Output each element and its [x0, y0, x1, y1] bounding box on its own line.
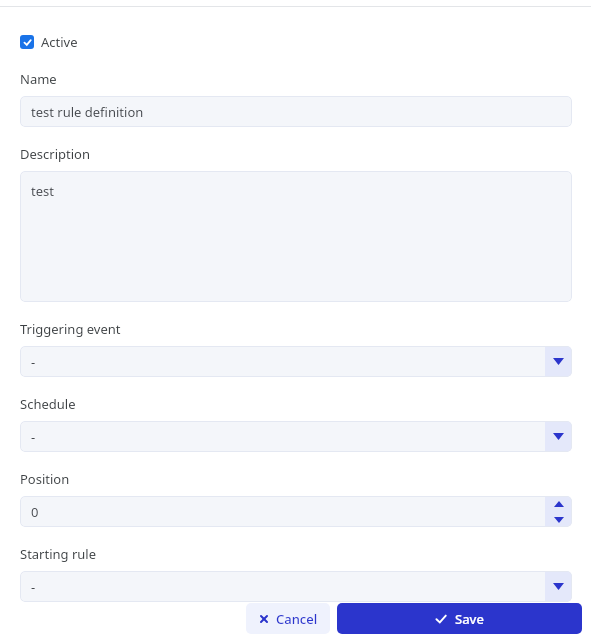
- button[interactable]: Open dropdown: [545, 346, 572, 377]
- button[interactable]: -: [20, 421, 572, 452]
- staticText: Position: [20, 470, 70, 488]
- staticText: Name: [20, 70, 57, 88]
- staticText: 0: [31, 503, 39, 521]
- staticText: Schedule: [20, 395, 76, 413]
- button[interactable]: Open dropdown: [545, 571, 572, 602]
- staticText: -: [31, 353, 36, 371]
- staticText: test rule definition: [31, 103, 144, 121]
- button[interactable]: test rule definition: [20, 96, 572, 127]
- button[interactable]: Increment: [545, 497, 572, 511]
- staticText: test: [31, 182, 54, 200]
- button[interactable]: -: [20, 571, 572, 602]
- staticText: Cancel: [276, 610, 318, 628]
- staticText: -: [31, 578, 36, 596]
- staticText: Active: [41, 33, 78, 51]
- button[interactable]: -: [20, 346, 572, 377]
- staticText: Starting rule: [20, 545, 97, 563]
- button[interactable]: Open dropdown: [545, 421, 572, 452]
- button[interactable]: test: [20, 171, 572, 302]
- button[interactable]: Cancel: [246, 603, 330, 634]
- button[interactable]: Save: [337, 603, 582, 634]
- staticText: Triggering event: [20, 320, 121, 338]
- staticText: -: [31, 428, 36, 446]
- staticText: Save: [455, 610, 484, 628]
- button[interactable]: Active: [20, 33, 78, 51]
- button[interactable]: Decrement: [545, 513, 572, 527]
- staticText: Description: [20, 145, 90, 163]
- button[interactable]: 0: [20, 496, 572, 527]
